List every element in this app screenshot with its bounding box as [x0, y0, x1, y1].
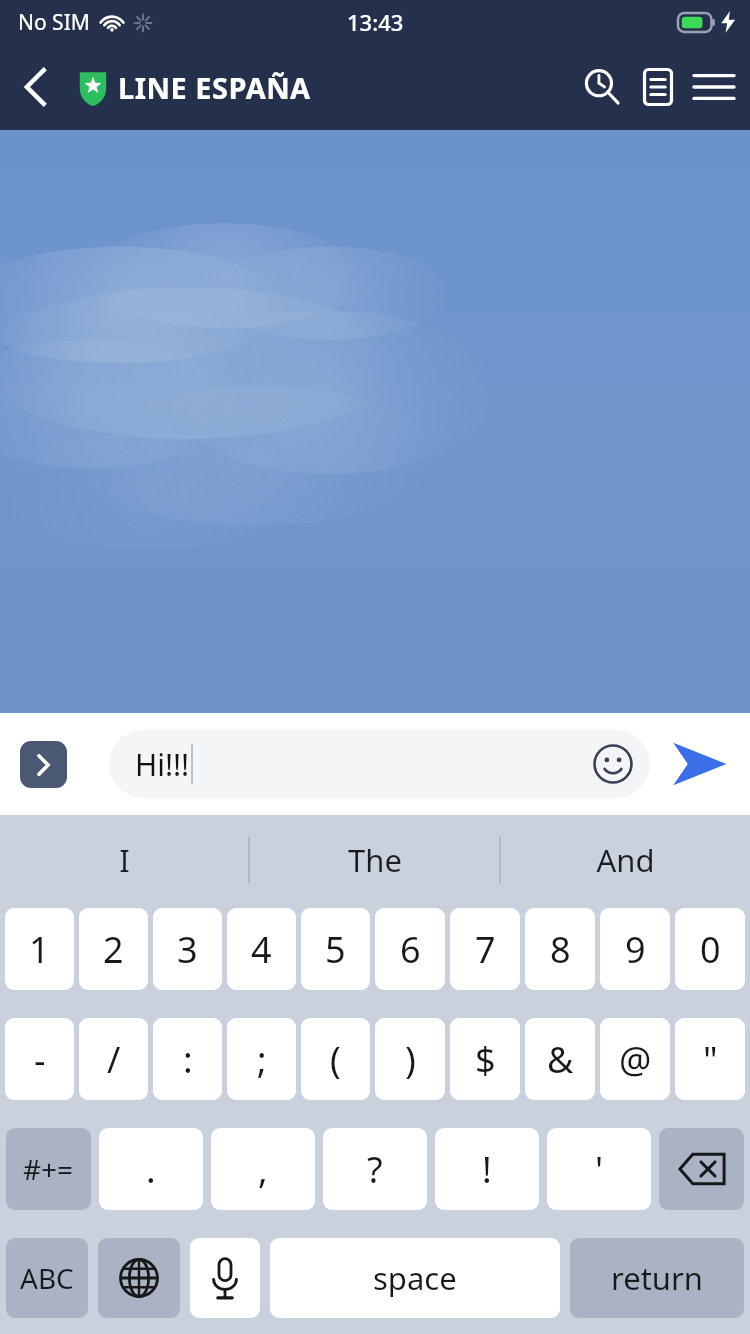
staticText: ) — [405, 1035, 416, 1084]
button[interactable]: ? — [323, 1128, 427, 1210]
button[interactable]: space — [270, 1238, 560, 1318]
staticText: 5 — [325, 925, 346, 974]
staticText: / — [107, 1035, 121, 1084]
staticText: return — [611, 1257, 703, 1299]
button[interactable]: Emoji — [590, 741, 636, 787]
button[interactable]: : — [153, 1018, 222, 1100]
staticText: No SIM — [18, 8, 90, 37]
button[interactable]: @ — [600, 1018, 670, 1100]
button[interactable]: Send — [668, 733, 730, 795]
button[interactable]: 4 — [227, 908, 296, 990]
staticText: " — [703, 1035, 718, 1084]
button[interactable]: Hi!!! — [109, 730, 650, 798]
button[interactable]: And — [501, 815, 750, 904]
button[interactable]: - — [5, 1018, 74, 1100]
button[interactable]: 8 — [525, 908, 595, 990]
button[interactable]: & — [525, 1018, 595, 1100]
button[interactable]: 1 — [5, 908, 74, 990]
staticText: The — [348, 839, 402, 881]
button[interactable]: ' — [547, 1128, 651, 1210]
staticText: @ — [619, 1035, 652, 1084]
staticText: 0 — [700, 925, 721, 974]
staticText: , — [258, 1145, 268, 1194]
staticText: ! — [482, 1145, 492, 1194]
staticText: ? — [367, 1145, 383, 1194]
staticText: I — [119, 839, 130, 881]
staticText: 2 — [103, 925, 124, 974]
button[interactable]: #+= — [6, 1128, 91, 1210]
button[interactable]: 2 — [79, 908, 148, 990]
staticText: And — [596, 839, 655, 881]
staticText: 6 — [400, 925, 421, 974]
button[interactable]: , — [211, 1128, 315, 1210]
button[interactable]: 7 — [450, 908, 520, 990]
button[interactable]: 6 — [375, 908, 445, 990]
staticText: ABC — [20, 1259, 74, 1297]
button[interactable]: Notes — [630, 59, 686, 115]
staticText: #+= — [23, 1150, 74, 1188]
button[interactable]: Dictate — [190, 1238, 260, 1318]
button[interactable]: Search history — [574, 59, 630, 115]
staticText: . — [146, 1145, 156, 1194]
button[interactable]: " — [675, 1018, 745, 1100]
staticText: Hi!!! — [135, 744, 190, 785]
staticText: 8 — [550, 925, 571, 974]
button[interactable]: ; — [227, 1018, 296, 1100]
staticText: 9 — [625, 925, 646, 974]
button[interactable]: 9 — [600, 908, 670, 990]
button[interactable]: Change keyboard language — [98, 1238, 180, 1318]
button[interactable]: I — [0, 815, 248, 904]
button[interactable]: / — [79, 1018, 148, 1100]
button[interactable]: . — [99, 1128, 203, 1210]
button[interactable]: More options — [20, 741, 67, 788]
button[interactable]: ( — [301, 1018, 370, 1100]
button[interactable]: return — [570, 1238, 744, 1318]
staticText: 13:43 — [347, 7, 404, 37]
staticText: ; — [257, 1035, 267, 1084]
button[interactable]: 5 — [301, 908, 370, 990]
button[interactable]: ! — [435, 1128, 539, 1210]
staticText: 7 — [475, 925, 496, 974]
staticText: : — [183, 1035, 193, 1084]
staticText: 3 — [177, 925, 198, 974]
staticText: space — [373, 1257, 457, 1299]
button[interactable]: $ — [450, 1018, 520, 1100]
staticText: LINE ESPAÑA — [118, 68, 311, 107]
staticText: & — [547, 1035, 574, 1084]
staticText: $ — [475, 1035, 496, 1084]
staticText: ' — [595, 1145, 604, 1194]
button[interactable]: Back — [8, 59, 64, 115]
button[interactable]: 0 — [675, 908, 745, 990]
button[interactable]: 3 — [153, 908, 222, 990]
staticText: 1 — [29, 925, 50, 974]
button[interactable]: The — [250, 815, 499, 904]
staticText: ( — [330, 1035, 341, 1084]
staticText: - — [34, 1035, 46, 1084]
staticText: 4 — [251, 925, 272, 974]
button[interactable]: ) — [375, 1018, 445, 1100]
button[interactable]: Menu — [686, 59, 742, 115]
button[interactable]: ABC — [6, 1238, 88, 1318]
button[interactable]: Backspace — [659, 1128, 744, 1210]
